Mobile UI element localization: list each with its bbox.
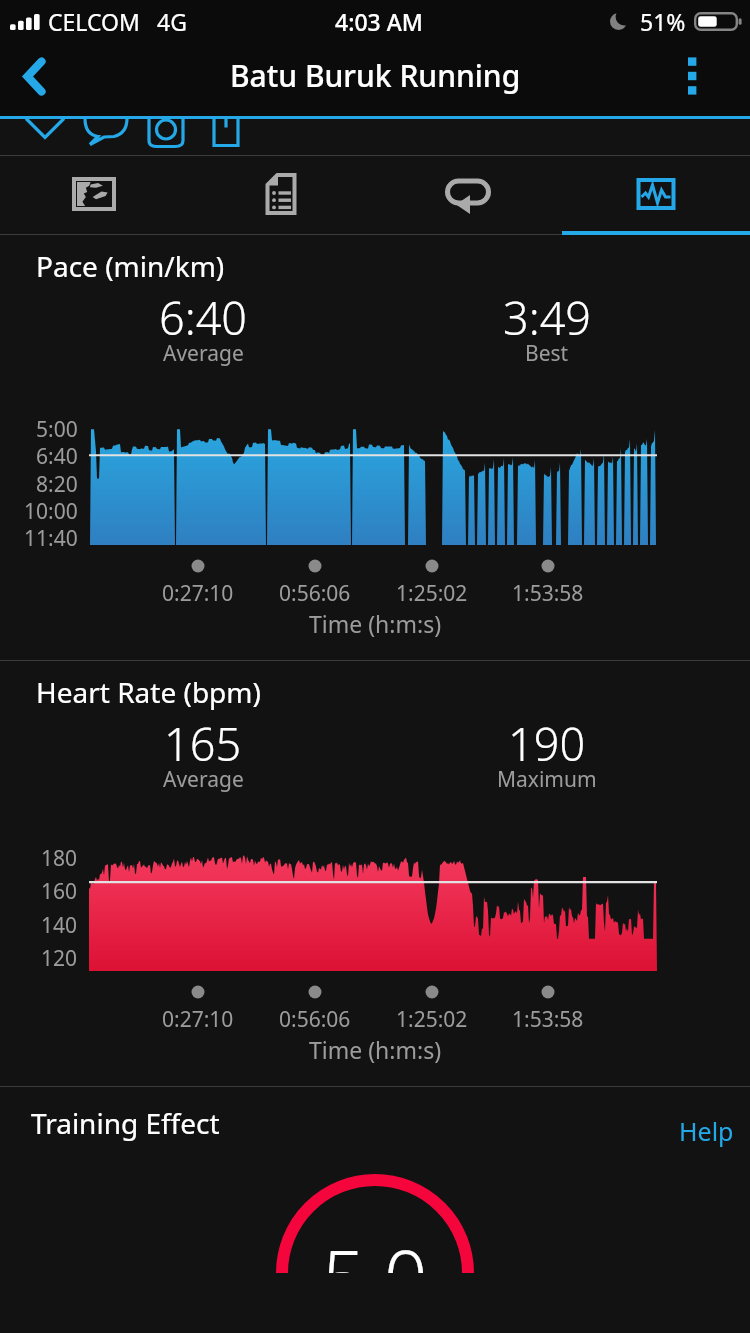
staticText: 140 — [41, 911, 78, 940]
button[interactable]: More options — [638, 44, 746, 116]
staticText: Maximum — [497, 765, 597, 794]
staticText: 1:53:58 — [512, 579, 584, 608]
staticText: 0:27:10 — [162, 1005, 234, 1034]
staticText: 11:40 — [24, 524, 78, 553]
staticText: 1:53:58 — [512, 1005, 584, 1034]
staticText: Time (h:m:s) — [309, 1034, 442, 1065]
staticText: 190 — [508, 713, 586, 774]
staticText: 1:25:02 — [396, 1005, 468, 1034]
staticText: Help — [679, 1114, 734, 1148]
staticText: 0:27:10 — [162, 579, 234, 608]
staticText: 51% — [640, 6, 686, 37]
staticText: 0:56:06 — [279, 579, 351, 608]
staticText: 120 — [41, 944, 78, 973]
staticText: 5.0 — [322, 1224, 428, 1273]
button[interactable]: Back — [0, 40, 68, 112]
staticText: Batu Buruk Running — [230, 55, 521, 96]
staticText: 160 — [41, 877, 78, 906]
staticText: 6:40 — [159, 287, 248, 348]
staticText: Best — [525, 339, 569, 368]
staticText: Pace (min/km) — [36, 247, 225, 285]
staticText: 4:03 AM — [335, 6, 423, 37]
staticText: 6:40 — [36, 442, 78, 471]
staticText: Average — [163, 765, 244, 794]
staticText: 4G — [157, 6, 187, 37]
button[interactable]: Laps — [374, 156, 562, 231]
staticText: Time (h:m:s) — [309, 608, 442, 639]
button[interactable]: Details — [187, 156, 374, 231]
staticText: 1:25:02 — [396, 579, 468, 608]
staticText: Training Effect — [31, 1104, 220, 1142]
staticText: 5:00 — [36, 415, 78, 444]
staticText: Heart Rate (bpm) — [36, 673, 261, 711]
staticText: 180 — [41, 844, 78, 873]
staticText: 8:20 — [36, 470, 78, 499]
button[interactable]: Map — [0, 156, 187, 231]
staticText: CELCOM — [48, 6, 140, 37]
button[interactable]: Charts — [562, 156, 750, 231]
staticText: 3:49 — [503, 287, 592, 348]
button[interactable]: Help — [675, 1112, 738, 1150]
staticText: 0:56:06 — [279, 1005, 351, 1034]
staticText: 10:00 — [24, 497, 78, 526]
staticText: Average — [163, 339, 244, 368]
staticText: 165 — [164, 713, 242, 774]
